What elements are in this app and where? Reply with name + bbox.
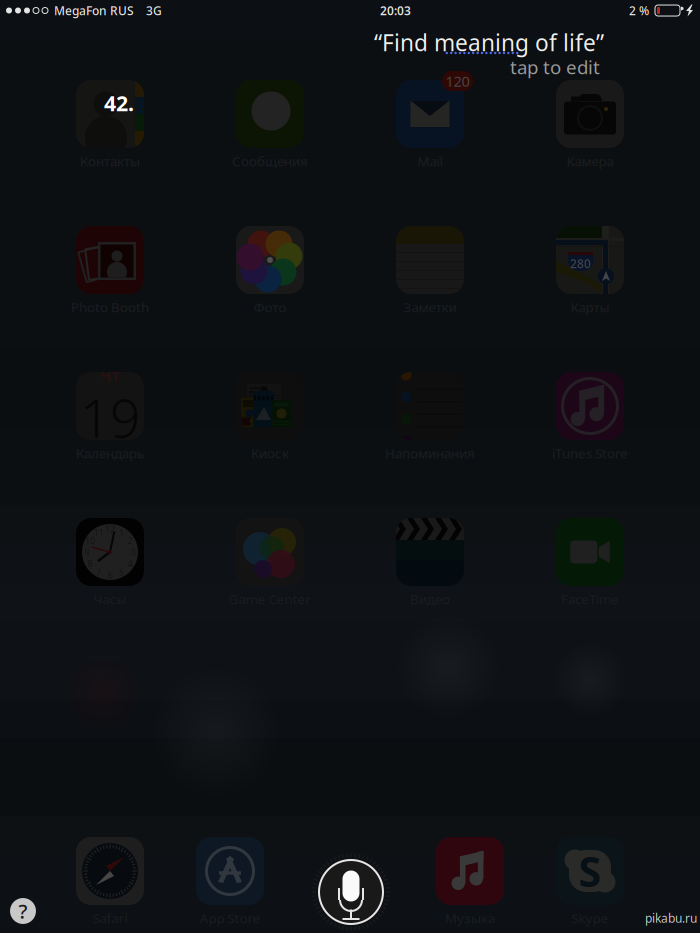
staticText: Safari <box>92 909 127 927</box>
staticText: S <box>578 844 601 898</box>
staticText: iTunes Store <box>552 444 628 462</box>
staticText: Видео <box>410 590 450 608</box>
button[interactable]: 120 <box>360 80 500 167</box>
button[interactable]: Камера <box>520 80 660 167</box>
staticText: 5 <box>119 566 124 578</box>
staticText: “Find meaning of life” <box>374 27 604 57</box>
button[interactable]: Заметки <box>360 226 500 313</box>
staticText: Часы <box>93 590 126 608</box>
staticText: Фото <box>253 298 286 316</box>
button[interactable]: Музыка <box>400 837 540 924</box>
staticText: Карты <box>570 298 609 316</box>
staticText: 8 <box>88 557 93 570</box>
staticText: pikabu.ru <box>645 910 697 926</box>
staticText: MegaFon RUS <box>54 2 134 18</box>
button[interactable]: FaceTime <box>520 518 660 605</box>
staticText: Photo Booth <box>71 298 149 316</box>
staticText: 9 <box>84 546 89 558</box>
button[interactable]: Чт <box>40 372 180 459</box>
button[interactable]: iTunes Store <box>520 372 660 459</box>
staticText: ? <box>18 898 27 924</box>
button[interactable]: Напоминания <box>360 372 500 459</box>
staticText: tap to edit <box>510 55 600 79</box>
staticText: 280 <box>570 255 591 271</box>
staticText: Камера <box>566 152 613 170</box>
staticText: Киоск <box>251 444 289 462</box>
button[interactable]: Сообщения <box>200 80 340 167</box>
button[interactable]: S <box>520 837 660 924</box>
button[interactable]: 280 <box>520 226 660 313</box>
staticText: Музыка <box>445 909 495 927</box>
staticText: 2 % <box>629 2 649 18</box>
staticText: 4 <box>127 557 132 570</box>
button[interactable]: Help <box>10 898 36 924</box>
staticText: 7 <box>96 566 101 578</box>
staticText: Заметки <box>403 298 456 316</box>
staticText: 19 <box>80 382 140 452</box>
button[interactable]: Siri microphone <box>309 850 393 933</box>
button[interactable]: 12 <box>40 518 180 605</box>
staticText: App Store <box>199 909 260 927</box>
staticText: 1 <box>119 526 124 538</box>
staticText: Mail <box>417 152 442 170</box>
button[interactable]: Safari <box>40 837 180 924</box>
staticText: Чт <box>100 364 120 387</box>
staticText: 2 <box>127 534 132 547</box>
staticText: Напоминания <box>385 444 475 462</box>
staticText: 10 <box>85 534 95 547</box>
button[interactable]: Game Center <box>200 518 340 605</box>
staticText: Контакты <box>80 152 140 170</box>
button[interactable]: Контакты <box>40 80 180 167</box>
staticText: Календарь <box>76 444 144 462</box>
staticText: Сообщения <box>232 152 308 170</box>
staticText: Skype <box>571 909 608 927</box>
button[interactable]: App Store <box>160 837 300 924</box>
button[interactable]: Фото <box>200 226 340 313</box>
staticText: 120 <box>445 71 469 91</box>
staticText: 3G <box>146 2 162 18</box>
staticText: 11 <box>93 526 103 538</box>
button[interactable]: Photo Booth <box>40 226 180 313</box>
staticText: 42. <box>104 89 134 117</box>
button[interactable]: Киоск <box>200 372 340 459</box>
staticText: 6 <box>108 569 113 581</box>
button[interactable]: tap to edit <box>260 55 600 79</box>
button[interactable]: Видео <box>360 518 500 605</box>
staticText: 12 <box>105 523 115 535</box>
staticText: 20:03 <box>380 2 411 18</box>
